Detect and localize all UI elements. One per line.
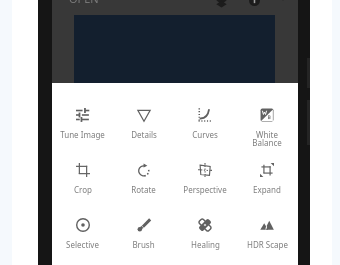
- staticText: Expand: [253, 184, 281, 195]
- button[interactable]: Expand: [236, 138, 298, 195]
- button[interactable]: Rotate: [113, 138, 174, 195]
- staticText: Tune Image: [60, 129, 105, 140]
- staticText: HDR Scape: [247, 239, 288, 250]
- button[interactable]: HDR Scape: [236, 193, 298, 250]
- staticText: Selective: [66, 239, 99, 250]
- staticText: Healing: [191, 239, 220, 250]
- button[interactable]: OPEN: [69, 0, 99, 6]
- staticText: OPEN: [69, 0, 99, 6]
- button[interactable]: Info: [247, 0, 261, 7]
- staticText: Brush: [132, 239, 155, 250]
- staticText: White Balance: [252, 129, 282, 148]
- staticText: Details: [131, 129, 157, 140]
- button[interactable]: Selective: [52, 193, 113, 250]
- button[interactable]: Layers: [214, 0, 228, 8]
- button[interactable]: Healing: [174, 193, 236, 250]
- button[interactable]: Crop: [52, 138, 113, 195]
- button[interactable]: Tune Image: [52, 83, 113, 140]
- button[interactable]: Perspective: [174, 138, 236, 195]
- button[interactable]: Details: [113, 83, 174, 140]
- button[interactable]: Curves: [174, 83, 236, 140]
- button[interactable]: White Balance: [236, 83, 298, 148]
- staticText: Crop: [74, 184, 92, 195]
- staticText: Rotate: [131, 184, 156, 195]
- staticText: Curves: [192, 129, 218, 140]
- button[interactable]: Brush: [113, 193, 174, 250]
- staticText: Perspective: [183, 184, 227, 195]
